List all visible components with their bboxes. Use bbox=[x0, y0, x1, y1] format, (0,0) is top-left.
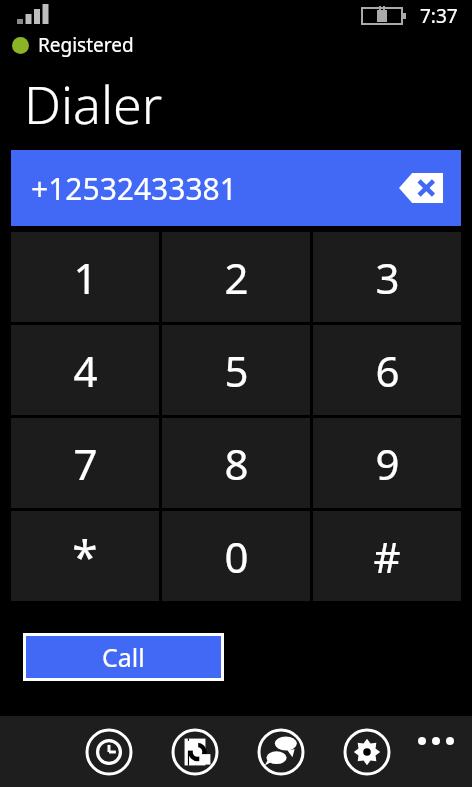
button[interactable]: +12532433381 bbox=[11, 150, 461, 226]
button[interactable]: More options bbox=[414, 730, 458, 752]
button[interactable]: 4 bbox=[11, 325, 159, 415]
staticText: 2 bbox=[224, 249, 249, 306]
button[interactable]: # bbox=[313, 511, 461, 601]
button[interactable]: 8 bbox=[162, 418, 310, 508]
staticText: 8 bbox=[224, 435, 249, 492]
staticText: Dialer bbox=[24, 68, 163, 139]
staticText: +12532433381 bbox=[31, 168, 237, 209]
button[interactable]: Recent calls bbox=[85, 728, 133, 776]
staticText: 7 bbox=[73, 435, 98, 492]
button[interactable]: 9 bbox=[313, 418, 461, 508]
staticText: 6 bbox=[375, 342, 400, 399]
button[interactable]: 3 bbox=[313, 232, 461, 322]
staticText: 3 bbox=[375, 249, 400, 306]
staticText: # bbox=[373, 528, 401, 585]
button[interactable]: Call bbox=[26, 636, 221, 678]
staticText: Call bbox=[102, 640, 145, 674]
button[interactable]: Messages bbox=[257, 728, 305, 776]
button[interactable]: 5 bbox=[162, 325, 310, 415]
staticText: * bbox=[72, 525, 98, 588]
button[interactable]: Contacts bbox=[171, 728, 219, 776]
staticText: 4 bbox=[73, 342, 98, 399]
staticText: 9 bbox=[375, 435, 400, 492]
staticText: 1 bbox=[73, 249, 98, 306]
button[interactable]: 1 bbox=[11, 232, 159, 322]
staticText: 5 bbox=[224, 342, 249, 399]
staticText: 7:37 bbox=[420, 3, 458, 29]
button[interactable]: Backspace bbox=[399, 173, 443, 203]
button[interactable]: 6 bbox=[313, 325, 461, 415]
button[interactable]: 0 bbox=[162, 511, 310, 601]
staticText: 0 bbox=[224, 528, 249, 585]
button[interactable]: 2 bbox=[162, 232, 310, 322]
button[interactable]: 7 bbox=[11, 418, 159, 508]
button[interactable]: Settings bbox=[343, 728, 391, 776]
button[interactable]: * bbox=[11, 511, 159, 601]
staticText: Registered bbox=[38, 32, 134, 58]
